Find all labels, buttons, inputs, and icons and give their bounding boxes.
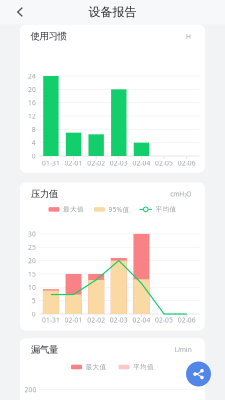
staticText: 设备报告: [88, 5, 136, 19]
staticText: 01-31: [42, 159, 60, 167]
staticText: 20: [28, 256, 36, 265]
button[interactable]: Share: [186, 361, 211, 386]
staticText: 02-03: [110, 159, 128, 167]
staticText: 02-06: [178, 159, 196, 167]
staticText: 15: [28, 269, 36, 278]
staticText: 平均值: [155, 205, 176, 213]
staticText: 0: [32, 310, 36, 318]
staticText: 平均值: [133, 363, 154, 371]
staticText: 25: [28, 243, 36, 252]
staticText: 0: [32, 152, 36, 160]
staticText: L/min: [175, 345, 192, 354]
staticText: 02-04: [132, 159, 150, 167]
staticText: 01-31: [42, 315, 60, 324]
staticText: 02-01: [64, 315, 82, 324]
staticText: 02-05: [155, 159, 173, 167]
staticText: 8: [32, 125, 36, 134]
staticText: 12: [28, 112, 36, 120]
staticText: 10: [28, 283, 36, 292]
button[interactable]: Back: [8, 0, 32, 24]
staticText: 02-02: [87, 159, 105, 167]
staticText: 5: [32, 296, 36, 305]
staticText: 02-02: [87, 315, 105, 324]
staticText: H: [186, 32, 191, 41]
staticText: 24: [28, 72, 36, 80]
staticText: 最大值: [85, 363, 106, 371]
staticText: 4: [32, 138, 36, 147]
staticText: 95%值: [108, 205, 129, 214]
staticText: 最大值: [63, 205, 84, 213]
staticText: 02-06: [178, 315, 196, 324]
staticText: 16: [28, 98, 36, 107]
staticText: 02-01: [64, 159, 82, 167]
staticText: 200: [24, 385, 36, 394]
staticText: 02-03: [110, 315, 128, 324]
staticText: 20: [28, 85, 36, 94]
staticText: 使用习惯: [30, 30, 66, 42]
staticText: 漏气量: [31, 344, 58, 355]
staticText: 02-04: [132, 315, 150, 324]
staticText: 压力值: [31, 188, 58, 200]
staticText: cmH₂O: [170, 189, 191, 198]
staticText: 30: [28, 229, 36, 238]
staticText: 02-05: [155, 315, 173, 324]
